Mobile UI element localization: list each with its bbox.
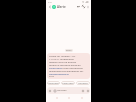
- staticText: 9:41: [48, 1, 53, 4]
- button[interactable]: Emoji: [47, 88, 52, 93]
- button[interactable]: Back: [54, 95, 59, 100]
- button[interactable]: Camera: [85, 88, 90, 93]
- button[interactable]: Back: [47, 4, 52, 9]
- button[interactable]: Top merci: [76, 81, 90, 85]
- staticText: 09:42: [49, 75, 55, 78]
- button[interactable]: More options: [86, 5, 90, 9]
- button[interactable]: Recents: [79, 95, 84, 100]
- button[interactable]: Video call: [76, 4, 81, 9]
- staticText: Message: [57, 89, 67, 92]
- staticText: Super merci: [62, 82, 74, 85]
- button[interactable]: Call: [81, 4, 86, 9]
- button[interactable]: Super merci: [61, 81, 75, 85]
- staticText: Top merci: [78, 82, 88, 85]
- staticText: 09:42: [66, 49, 72, 52]
- button[interactable]: Conflit en Ukraine : Art. L.1212-2. Mobi…: [47, 53, 90, 79]
- staticText: Conflit en Ukraine : Art. L.1212-2. Mobi…: [49, 54, 84, 75]
- button[interactable]: Parfait merci: [47, 81, 60, 85]
- staticText: Alerte: [57, 5, 66, 9]
- staticText: Parfait merci: [47, 82, 60, 85]
- button[interactable]: Attach: [80, 88, 85, 93]
- button[interactable]: Home: [66, 95, 71, 100]
- button[interactable]: Stickers: [52, 88, 57, 93]
